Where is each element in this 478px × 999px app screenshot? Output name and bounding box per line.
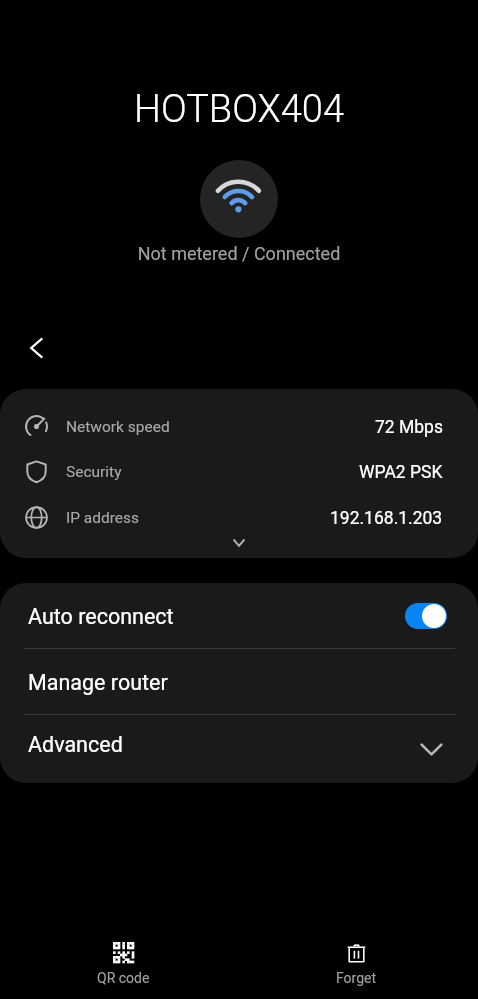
staticText: 192.168.1.203 <box>330 508 443 529</box>
staticText: Security <box>66 463 122 481</box>
button[interactable]: Forget <box>296 930 417 999</box>
staticText: Advanced <box>28 732 123 757</box>
button[interactable]: Manage router <box>0 649 478 714</box>
staticText: HOTBOX404 <box>0 87 478 132</box>
staticText: 72 Mbps <box>375 417 443 438</box>
button[interactable]: IP address <box>0 495 478 540</box>
staticText: IP address <box>66 509 140 527</box>
button[interactable]: QR code <box>63 930 184 999</box>
button[interactable]: Security <box>0 449 478 494</box>
button[interactable]: Show more <box>0 529 478 557</box>
button[interactable]: Advanced <box>0 715 478 783</box>
staticText: WPA2 PSK <box>359 462 443 483</box>
button[interactable]: Back <box>9 320 65 376</box>
staticText: Network speed <box>66 418 170 436</box>
staticText: Not metered / Connected <box>0 243 478 264</box>
button[interactable]: Auto reconnect <box>0 583 478 648</box>
button[interactable]: Network speed <box>0 404 478 449</box>
staticText: Auto reconnect <box>28 604 174 629</box>
staticText: QR code <box>97 970 150 986</box>
staticText: Manage router <box>28 670 168 695</box>
staticText: Forget <box>336 970 377 986</box>
